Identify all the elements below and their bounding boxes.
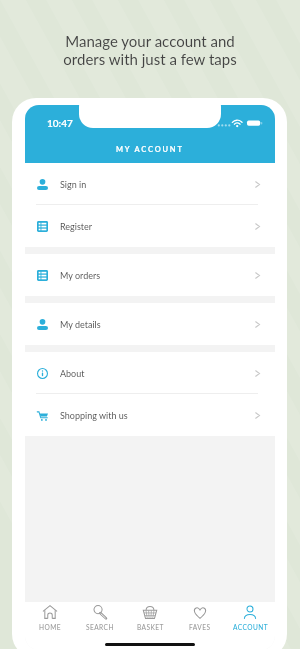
staticText: Shopping with us xyxy=(60,410,128,421)
staticText: HOME xyxy=(39,623,61,631)
button[interactable]: Sign in xyxy=(25,163,275,205)
button[interactable]: My details xyxy=(25,303,275,345)
staticText: My details xyxy=(60,319,101,330)
button[interactable]: HOME xyxy=(25,605,75,631)
staticText: Manage your account and orders with just… xyxy=(0,32,300,68)
staticText: FAVES xyxy=(189,623,211,631)
staticText: About xyxy=(60,368,85,379)
button[interactable]: FAVES xyxy=(175,605,225,631)
button[interactable]: ACCOUNT xyxy=(225,605,275,631)
staticText: SEARCH xyxy=(86,623,114,631)
button[interactable]: Shopping with us xyxy=(25,394,275,436)
staticText: BASKET xyxy=(137,623,164,631)
staticText: My orders xyxy=(60,270,101,281)
staticText: MY ACCOUNT xyxy=(116,145,184,154)
staticText: 10:47 xyxy=(47,117,73,129)
button[interactable]: SEARCH xyxy=(75,605,125,631)
staticText: Sign in xyxy=(60,179,87,190)
button[interactable]: My orders xyxy=(25,254,275,296)
button[interactable]: BASKET xyxy=(125,605,175,631)
staticText: ACCOUNT xyxy=(233,623,268,631)
staticText: Register xyxy=(60,221,93,232)
button[interactable]: About xyxy=(25,352,275,394)
button[interactable]: Register xyxy=(25,205,275,247)
